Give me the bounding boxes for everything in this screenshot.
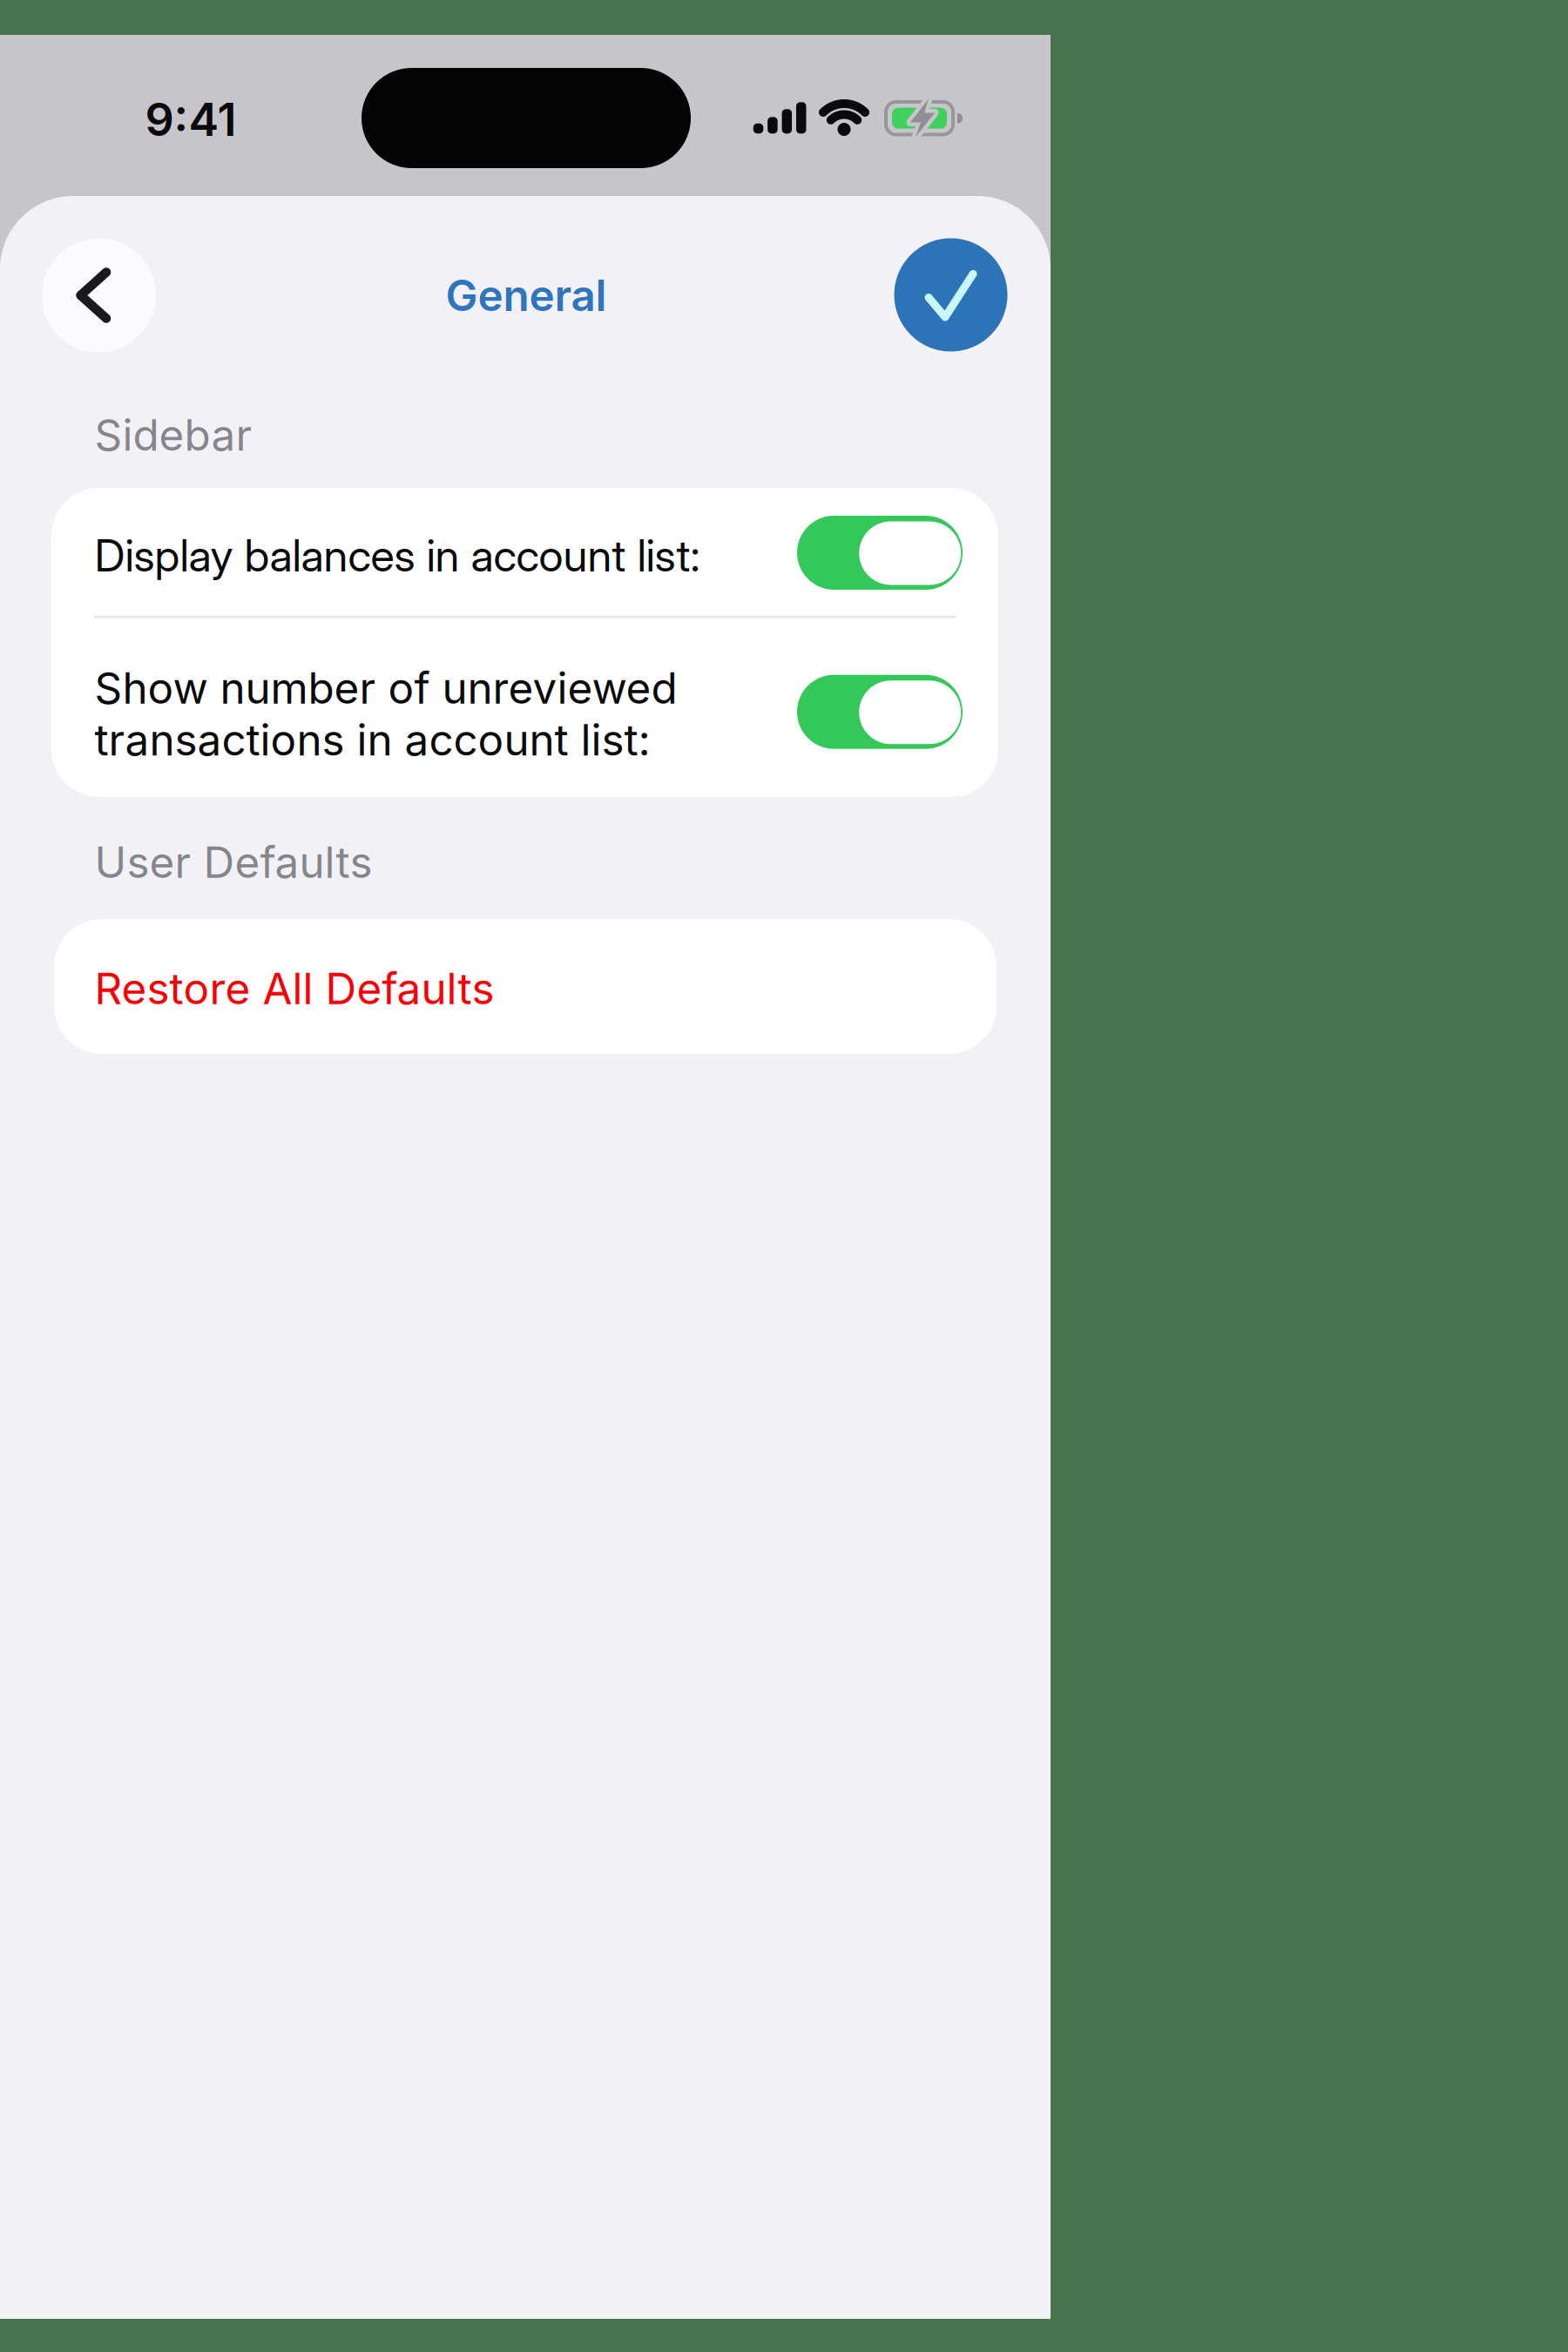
- staticText: User Defaults: [95, 837, 372, 888]
- staticText: General: [446, 270, 607, 321]
- staticText: transactions in account list:: [95, 714, 650, 765]
- staticText: Show number of unreviewed: [95, 663, 677, 713]
- staticText: Restore All Defaults: [95, 963, 494, 1014]
- button[interactable]: Display balances in account list: [51, 488, 998, 617]
- staticText: 9:41: [145, 93, 237, 146]
- button[interactable]: Restore All Defaults: [54, 919, 997, 1054]
- button[interactable]: Done: [894, 238, 1007, 351]
- staticText: Display balances in account list:: [95, 529, 700, 582]
- button[interactable]: Show number of unreviewed transactions i…: [51, 618, 998, 797]
- button[interactable]: Back: [42, 238, 156, 352]
- staticText: Sidebar: [95, 410, 252, 460]
